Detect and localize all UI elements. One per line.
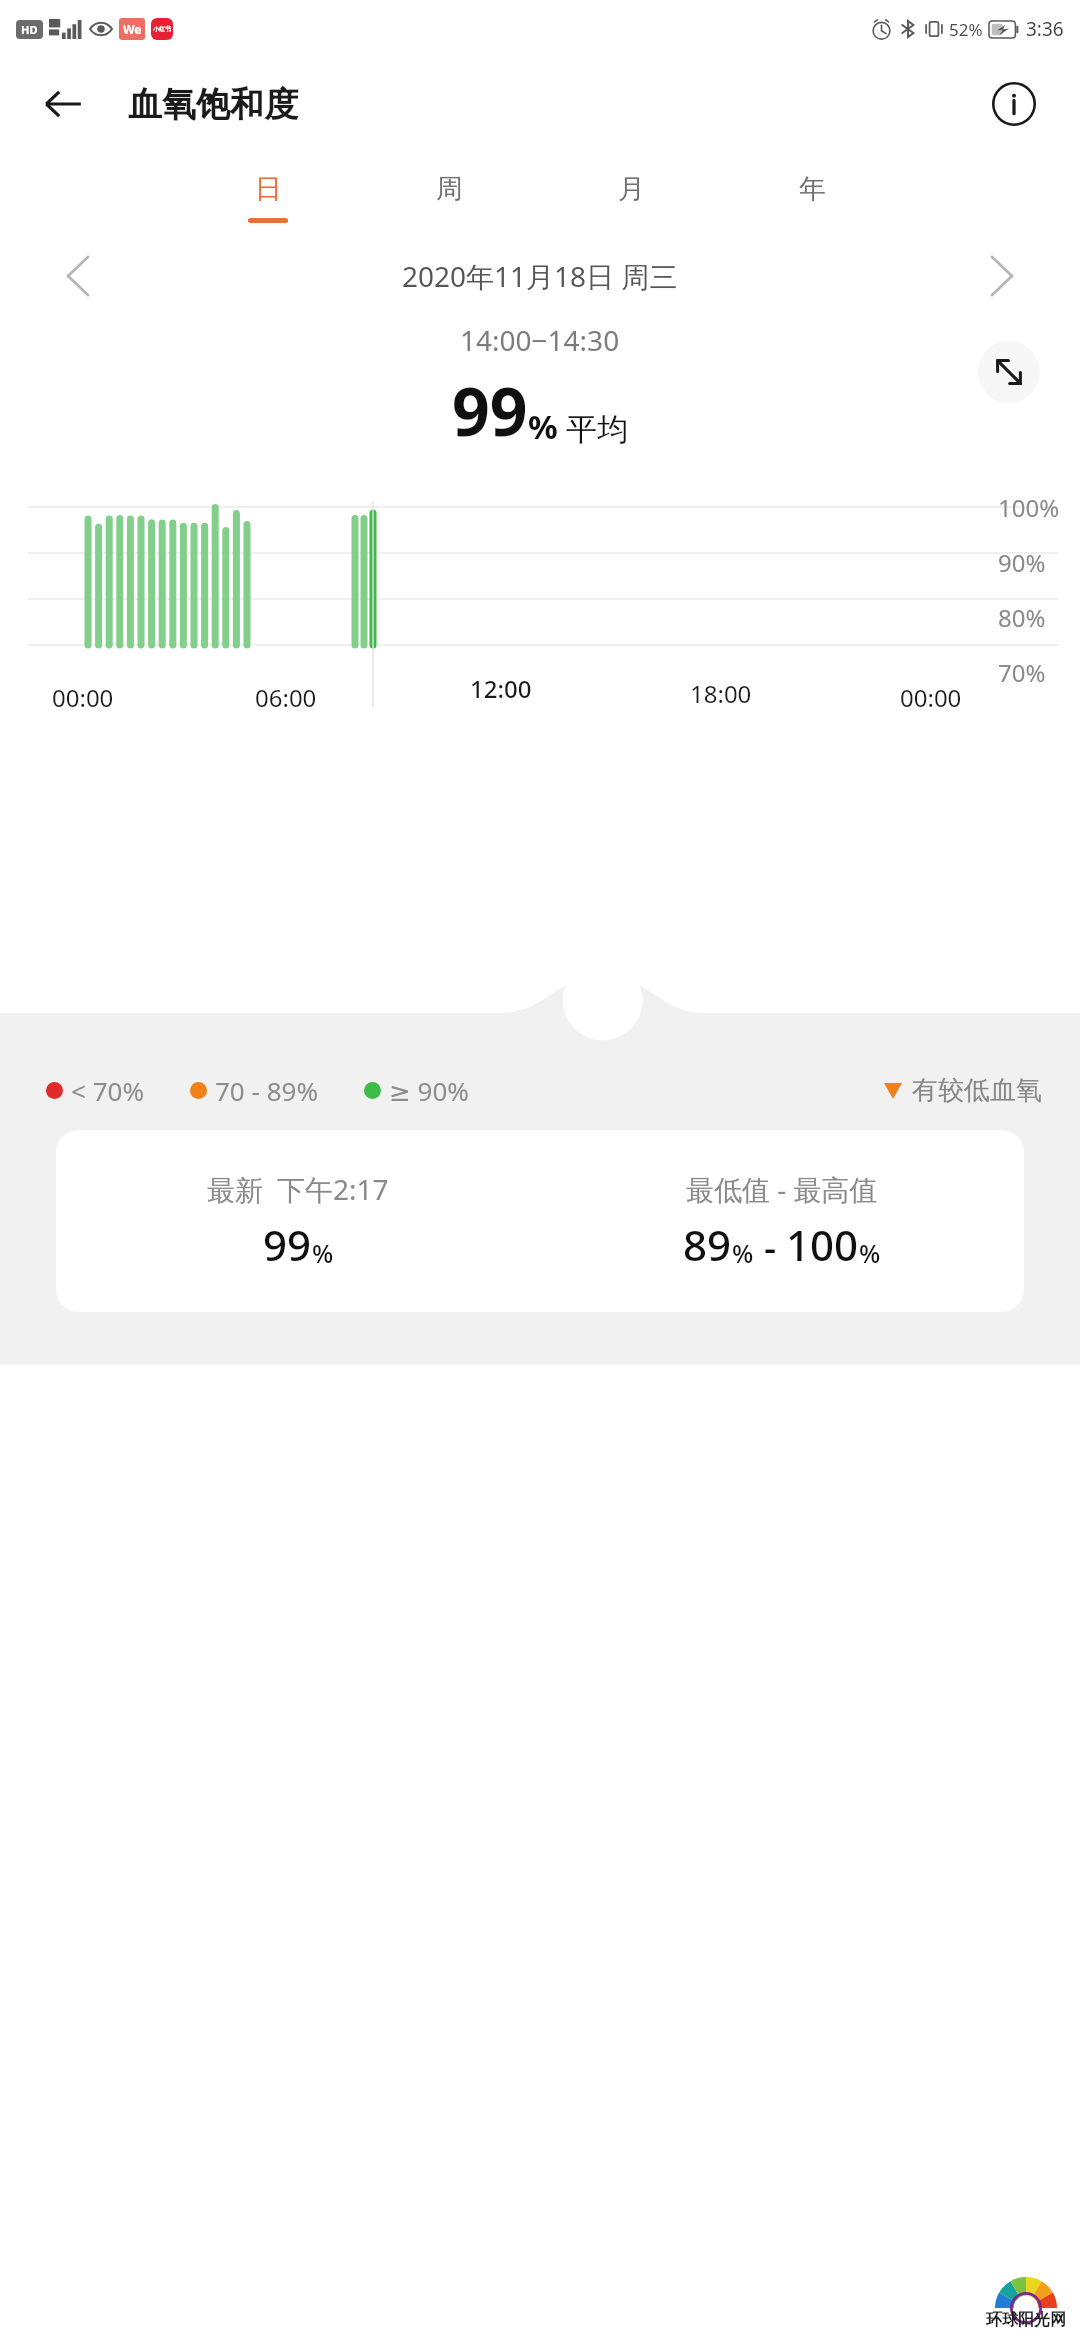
button[interactable]: 前一天	[52, 250, 104, 302]
staticText: 周	[436, 172, 463, 206]
staticText: 89	[683, 1216, 732, 1273]
staticText: 最新	[207, 1173, 263, 1208]
staticText: 80%	[998, 601, 1046, 634]
staticText: 2020年11月18日 周三	[402, 257, 678, 295]
button[interactable]: 全屏	[978, 341, 1040, 403]
staticText: 平均	[566, 410, 628, 449]
staticText: ≥ 90%	[389, 1073, 469, 1108]
button[interactable]: 信息	[988, 78, 1040, 130]
staticText: %	[859, 1236, 881, 1270]
staticText: 00:00	[52, 681, 114, 714]
staticText: 00:00	[900, 681, 962, 714]
staticText: 血氧饱和度	[128, 83, 298, 126]
staticText: %	[312, 1236, 334, 1270]
button[interactable]: 后一天	[976, 250, 1028, 302]
staticText: %	[528, 404, 558, 449]
button[interactable]: ≥ 90%	[364, 1073, 469, 1108]
staticText: 70 - 89%	[215, 1073, 318, 1108]
staticText: 52%	[949, 18, 983, 41]
staticText: 年	[799, 172, 826, 206]
staticText: 99	[452, 365, 528, 455]
staticText: 12:00	[470, 672, 532, 705]
staticText: We	[123, 21, 142, 37]
staticText: 下午2:17	[277, 1170, 389, 1208]
staticText: HD	[21, 22, 38, 37]
staticText: < 70%	[71, 1073, 144, 1108]
staticText: 3:36	[1026, 16, 1064, 42]
staticText: 70%	[998, 656, 1046, 689]
button[interactable]: 返回	[38, 79, 88, 129]
button[interactable]: 年	[784, 172, 840, 223]
staticText: -	[754, 1221, 786, 1273]
staticText: 90%	[998, 546, 1046, 579]
staticText: 日	[255, 172, 282, 206]
staticText: 06:00	[255, 681, 317, 714]
staticText: %	[732, 1236, 754, 1270]
staticText: 14:00−14:30	[460, 321, 620, 359]
staticText: 环球阳光网	[986, 2310, 1066, 2330]
staticText: 有较低血氧	[912, 1074, 1042, 1107]
staticText: 100%	[998, 491, 1060, 524]
button[interactable]: < 70%	[46, 1073, 144, 1108]
button[interactable]: 最新	[56, 1130, 1024, 1312]
staticText: 小红书	[153, 25, 171, 33]
staticText: 99	[263, 1216, 312, 1273]
button[interactable]: 70 - 89%	[190, 1073, 318, 1108]
staticText: 100	[786, 1216, 859, 1273]
button[interactable]: 日	[240, 172, 296, 223]
staticText: 18:00	[690, 677, 752, 710]
button[interactable]: 月	[603, 172, 659, 223]
staticText: 最低值 - 最高值	[686, 1170, 878, 1208]
button[interactable]: 周	[421, 172, 477, 223]
staticText: 月	[618, 172, 645, 206]
